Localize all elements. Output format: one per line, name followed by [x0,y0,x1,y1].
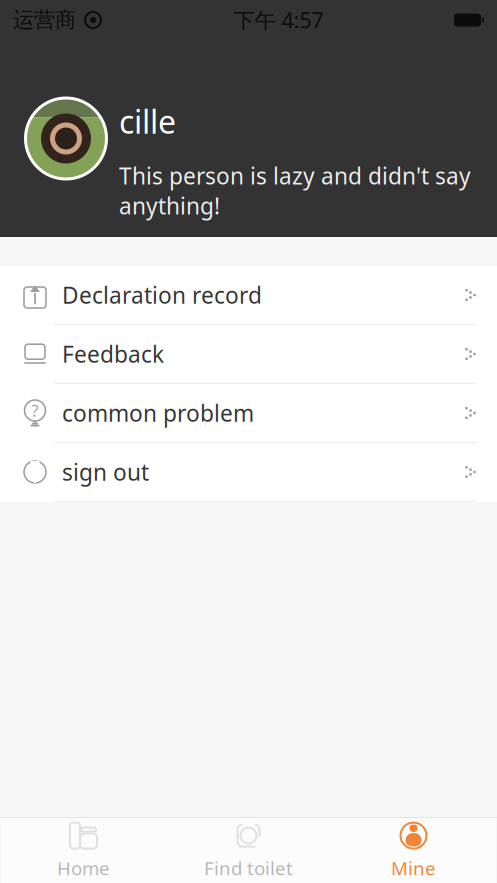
staticText: 运营商 [13,7,76,33]
staticText: common problem [62,398,254,428]
staticText: Mine [391,856,436,880]
button[interactable]: sign out [0,443,497,501]
staticText: This person is lazy and didn't say anyth… [119,161,471,221]
staticText: ? [31,400,38,421]
button[interactable]: Home [1,818,166,883]
button[interactable]: ? [0,384,497,442]
button[interactable]: Declaration record [0,266,497,324]
button[interactable]: Find toilet [166,818,331,883]
button[interactable]: Feedback [0,325,497,383]
staticText: Find toilet [204,856,293,880]
button[interactable]: Mine [331,818,496,883]
staticText: 下午 4:57 [233,6,323,34]
staticText: Feedback [62,339,164,369]
staticText: Home [57,856,110,880]
staticText: cille [119,100,176,143]
staticText: sign out [62,457,149,487]
staticText: Declaration record [62,280,262,310]
